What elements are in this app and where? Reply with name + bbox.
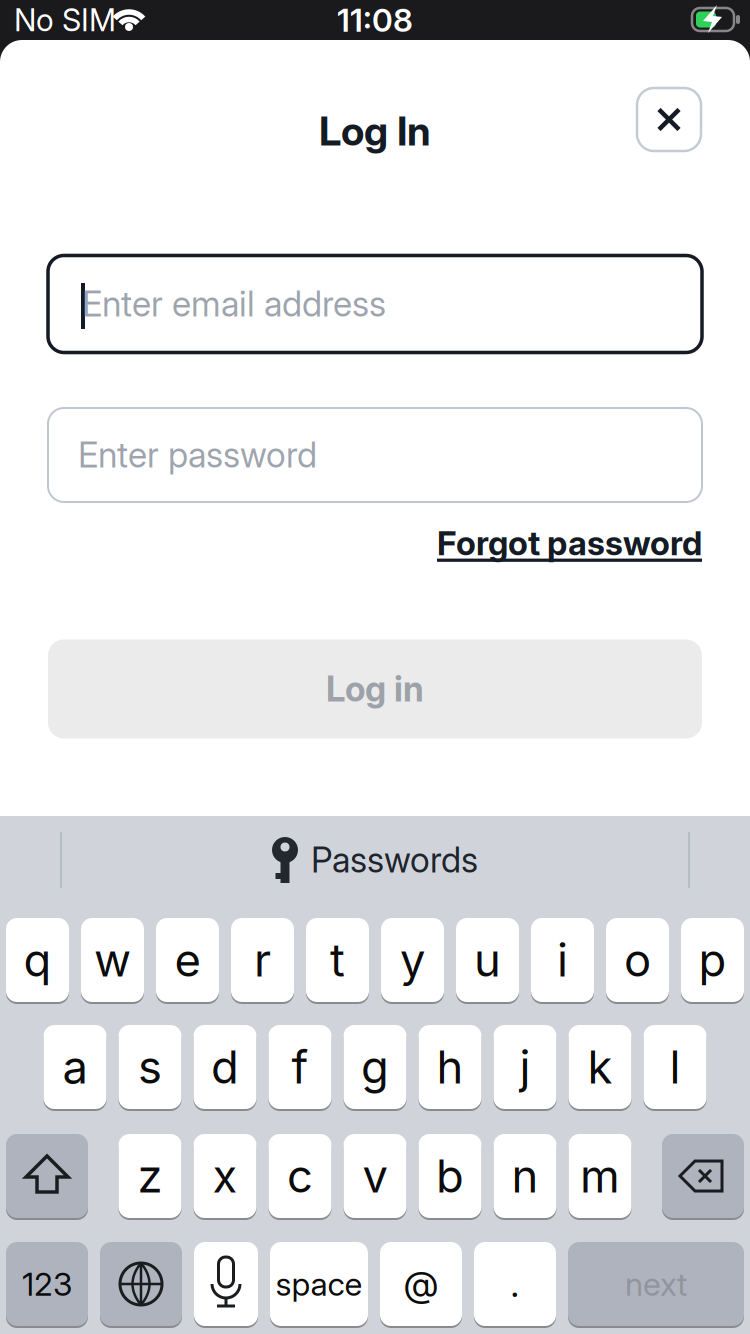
button[interactable]: Forgot password (437, 523, 702, 563)
staticText: h (436, 1040, 463, 1094)
button[interactable]: z (118, 1133, 181, 1219)
staticText: r (254, 933, 271, 987)
button[interactable]: u (456, 917, 519, 1003)
staticText: s (138, 1040, 162, 1094)
staticText: 11:08 (337, 1, 413, 39)
staticText: f (291, 1040, 308, 1094)
staticText: next (625, 1265, 687, 1303)
staticText: o (624, 933, 651, 987)
button[interactable]: Log in (48, 639, 702, 738)
staticText: m (580, 1149, 620, 1203)
button[interactable]: d (193, 1024, 256, 1110)
staticText: b (436, 1149, 464, 1203)
staticText: x (212, 1149, 237, 1203)
button[interactable]: Close (637, 88, 701, 151)
staticText: g (361, 1040, 389, 1094)
button[interactable]: q (6, 917, 69, 1003)
button[interactable]: Numbers (6, 1241, 88, 1327)
button[interactable]: Shift (6, 1133, 88, 1219)
staticText: z (137, 1149, 162, 1203)
staticText: Log In (319, 107, 431, 155)
button[interactable]: Next keyboard (100, 1241, 182, 1327)
button[interactable]: a (43, 1024, 106, 1110)
staticText: y (400, 933, 425, 987)
staticText: n (511, 1149, 538, 1203)
staticText: k (587, 1040, 612, 1094)
button[interactable]: s (118, 1024, 181, 1110)
staticText: a (62, 1040, 87, 1094)
button[interactable]: next (568, 1241, 744, 1327)
staticText: d (211, 1040, 239, 1094)
button[interactable]: p (681, 917, 744, 1003)
staticText: j (519, 1040, 530, 1094)
button[interactable]: y (381, 917, 444, 1003)
staticText: Enter email address (82, 284, 386, 324)
button[interactable]: Passwords (272, 837, 478, 883)
button[interactable]: w (81, 917, 144, 1003)
button[interactable]: o (606, 917, 669, 1003)
staticText: p (698, 933, 726, 987)
staticText: q (23, 933, 51, 987)
button[interactable]: v (343, 1133, 406, 1219)
button[interactable]: @ (380, 1241, 462, 1327)
button[interactable]: l (643, 1024, 706, 1110)
button[interactable]: Delete (662, 1133, 744, 1219)
button[interactable]: h (418, 1024, 481, 1110)
button[interactable]: f (268, 1024, 331, 1110)
button[interactable]: j (493, 1024, 556, 1110)
staticText: e (174, 933, 200, 987)
staticText: u (474, 933, 501, 987)
staticText: Log in (326, 669, 424, 709)
button[interactable]: g (343, 1024, 406, 1110)
staticText: i (557, 933, 568, 987)
button[interactable]: b (418, 1133, 481, 1219)
staticText: v (362, 1149, 387, 1203)
staticText: . (510, 1263, 519, 1305)
button[interactable]: t (306, 917, 369, 1003)
staticText: Enter password (78, 435, 317, 475)
button[interactable]: Dictate (194, 1241, 258, 1327)
button[interactable]: x (193, 1133, 256, 1219)
button[interactable]: . (474, 1241, 556, 1327)
button[interactable]: r (231, 917, 294, 1003)
button[interactable]: c (268, 1133, 331, 1219)
button[interactable]: e (156, 917, 219, 1003)
button[interactable]: m (568, 1133, 631, 1219)
staticText: c (287, 1149, 313, 1203)
staticText: space (275, 1265, 362, 1303)
staticText: l (669, 1040, 680, 1094)
staticText: Passwords (311, 840, 478, 880)
button[interactable]: n (493, 1133, 556, 1219)
button[interactable]: i (531, 917, 594, 1003)
staticText: w (94, 933, 131, 987)
button[interactable]: space (270, 1241, 368, 1327)
staticText: 123 (22, 1265, 72, 1303)
button[interactable]: k (568, 1024, 631, 1110)
staticText: Forgot password (437, 523, 702, 563)
staticText: @ (403, 1263, 438, 1305)
staticText: t (330, 933, 345, 987)
staticText: No SIM (14, 2, 116, 38)
